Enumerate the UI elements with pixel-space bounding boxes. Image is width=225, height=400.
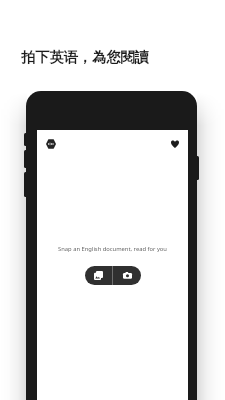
button[interactable]: Pick from gallery [85, 266, 112, 285]
staticText: Snap an English document, read for you [58, 245, 167, 253]
staticText: 拍下英语，為您閱讀 [21, 48, 149, 66]
button[interactable]: Take photo [113, 266, 141, 285]
button[interactable]: App logo [44, 137, 57, 150]
button[interactable]: Favourites [168, 137, 181, 150]
